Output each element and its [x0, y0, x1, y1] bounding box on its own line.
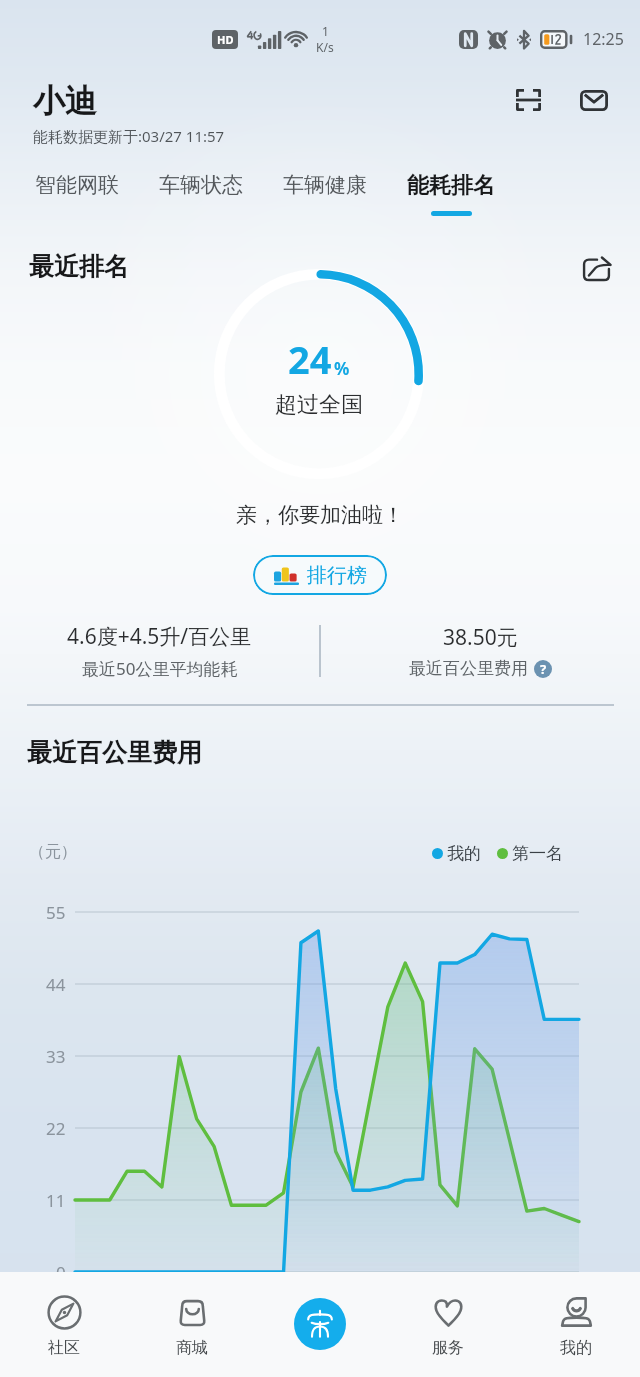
button[interactable]: Scan	[504, 76, 552, 124]
staticText: 24	[288, 333, 332, 385]
staticText: 33	[46, 1045, 66, 1068]
staticText: 超过全国	[275, 391, 363, 419]
button[interactable]: Help	[534, 660, 552, 678]
button[interactable]: 我的	[532, 1295, 620, 1369]
staticText: 55	[46, 901, 66, 924]
staticText: 第一名	[512, 843, 563, 864]
staticText: HD	[217, 32, 234, 47]
staticText: 最近50公里平均能耗	[82, 657, 238, 680]
staticText: 小迪	[33, 81, 97, 121]
staticText: K/s	[316, 39, 334, 55]
staticText: 商城	[176, 1338, 208, 1358]
button[interactable]: 车辆状态	[139, 172, 263, 214]
staticText: 最近百公里费用	[409, 658, 528, 679]
button[interactable]: 商城	[148, 1295, 236, 1369]
staticText: （元）	[29, 842, 77, 862]
button[interactable]: 能耗排名	[387, 172, 515, 216]
staticText: 车辆健康	[283, 172, 367, 198]
staticText: 我的	[560, 1338, 592, 1358]
button[interactable]: 服务	[404, 1295, 492, 1369]
button[interactable]: 排行榜	[253, 555, 387, 595]
staticText: 能耗数据更新于:03/27 11:57	[33, 126, 225, 146]
staticText: 能耗排名	[407, 172, 495, 200]
staticText: ?	[540, 660, 547, 678]
button[interactable]: 社区	[20, 1295, 108, 1369]
staticText: 亲，你要加油啦！	[236, 502, 404, 528]
staticText: 12:25	[583, 28, 624, 50]
staticText: 0	[56, 1261, 66, 1284]
staticText: 最近百公里费用	[27, 737, 202, 768]
button[interactable]: 智能网联	[15, 172, 139, 214]
staticText: 22	[46, 1117, 66, 1140]
staticText: 最近排名	[29, 251, 129, 282]
staticText: 1	[322, 23, 329, 39]
staticText: %	[334, 357, 350, 380]
staticText: 4.6度+4.5升/百公里	[67, 622, 252, 651]
staticText: 我的	[447, 843, 481, 864]
button[interactable]: Share	[574, 247, 618, 291]
staticText: 社区	[48, 1338, 80, 1358]
staticText: 38.50元	[443, 623, 518, 652]
button[interactable]: 车辆健康	[263, 172, 387, 214]
staticText: 服务	[432, 1338, 464, 1358]
button[interactable]: Messages	[570, 76, 618, 124]
button[interactable]: 宋	[294, 1298, 346, 1350]
staticText: 排行榜	[307, 563, 367, 588]
staticText: 11	[46, 1189, 66, 1212]
staticText: 44	[46, 973, 66, 996]
staticText: 智能网联	[35, 172, 119, 198]
staticText: 车辆状态	[159, 172, 243, 198]
